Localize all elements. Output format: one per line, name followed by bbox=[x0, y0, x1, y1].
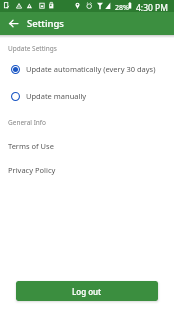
staticText: Settings bbox=[27, 17, 64, 30]
button[interactable]: Update manually bbox=[0, 91, 174, 101]
staticText: General Info bbox=[8, 118, 47, 127]
staticText: 28% bbox=[115, 3, 129, 13]
staticText: Terms of Use bbox=[8, 141, 54, 151]
button[interactable]: Update automatically (every 30 days) bbox=[0, 64, 174, 74]
staticText: Update automatically (every 30 days) bbox=[26, 64, 156, 74]
button[interactable]: Privacy Policy bbox=[0, 165, 174, 175]
button[interactable]: Back bbox=[0, 12, 27, 35]
staticText: Privacy Policy bbox=[8, 165, 56, 175]
staticText: Log out bbox=[72, 286, 102, 297]
staticText: 4:30 PM bbox=[136, 2, 168, 14]
staticText: Update Settings bbox=[8, 44, 57, 53]
button[interactable]: Log out bbox=[16, 281, 158, 301]
button[interactable]: Terms of Use bbox=[0, 141, 174, 151]
staticText: Update manually bbox=[26, 91, 87, 101]
